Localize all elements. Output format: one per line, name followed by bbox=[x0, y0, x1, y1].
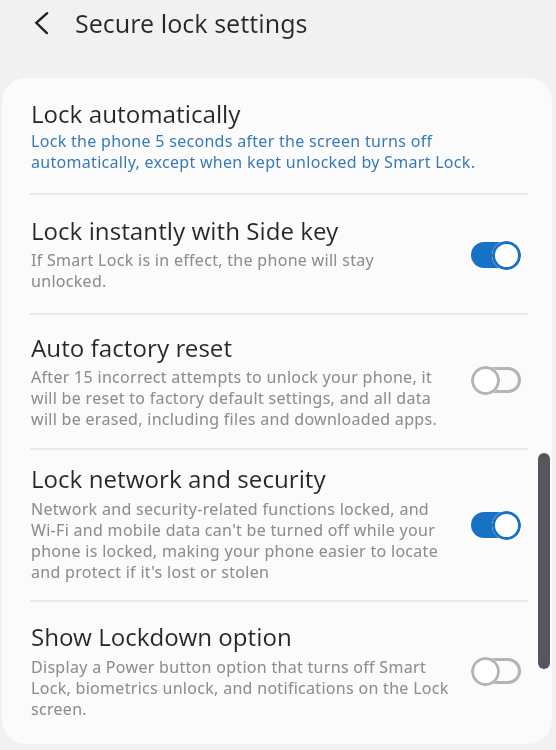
button[interactable] bbox=[28, 11, 56, 39]
staticText: Display a Power button option that turns… bbox=[31, 656, 449, 720]
button[interactable] bbox=[2, 600, 552, 744]
button[interactable] bbox=[2, 88, 552, 193]
button[interactable] bbox=[471, 240, 521, 270]
button[interactable] bbox=[471, 656, 521, 686]
staticText: Auto factory reset bbox=[31, 331, 233, 364]
button[interactable] bbox=[2, 313, 552, 448]
button[interactable] bbox=[471, 365, 521, 395]
staticText: Lock network and security bbox=[31, 462, 326, 495]
staticText: Secure lock settings bbox=[75, 6, 308, 40]
button[interactable] bbox=[2, 193, 552, 313]
staticText: Lock the phone 5 seconds after the scree… bbox=[31, 130, 476, 173]
staticText: Lock automatically bbox=[31, 97, 241, 130]
staticText: After 15 incorrect attempts to unlock yo… bbox=[31, 366, 437, 430]
button[interactable] bbox=[471, 510, 521, 540]
button[interactable] bbox=[2, 448, 552, 600]
staticText: If Smart Lock is in effect, the phone wi… bbox=[31, 249, 375, 292]
staticText: Show Lockdown option bbox=[31, 620, 292, 653]
staticText: Network and security-related functions l… bbox=[31, 498, 439, 583]
staticText: Lock instantly with Side key bbox=[31, 214, 339, 247]
